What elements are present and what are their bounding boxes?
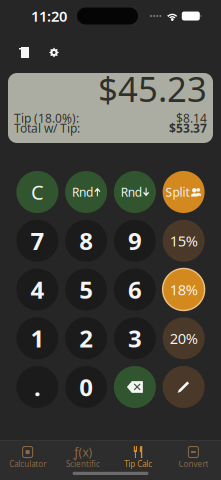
staticText: Calculator [9,458,46,469]
button[interactable]: 8 [65,220,107,262]
staticText: 11:20 [31,6,67,26]
staticText: $8.14 [176,110,207,126]
button[interactable]: Split [163,171,205,213]
button[interactable]: 18% [163,268,205,310]
staticText: 1 [30,322,44,354]
button[interactable]: 6 [114,268,156,310]
staticText: 15% [170,231,198,250]
staticText: Scientific [66,458,100,469]
button[interactable]: Settings [44,41,64,63]
staticText: 20% [170,328,198,348]
button[interactable]: 9 [114,220,156,262]
button[interactable]: ƒ(x) [55,441,110,469]
staticText: Rnd [121,184,142,200]
button[interactable]: Delete [114,366,156,408]
staticText: Tip Calc [124,458,152,469]
button[interactable]: 7 [16,220,58,262]
staticText: 5 [79,274,93,305]
button[interactable]: Calculator [0,441,55,469]
button[interactable]: . [16,366,58,408]
staticText: 0 [79,371,93,403]
staticText: Convert [178,458,208,469]
staticText: 2 [79,322,93,354]
staticText: Rnd [72,184,93,200]
button[interactable]: 5 [65,268,107,310]
staticText: 9 [128,225,142,257]
button[interactable]: 20% [163,317,205,359]
staticText: 8 [79,225,93,257]
staticText: 3 [128,322,142,354]
staticText: Tip (18.0%): [14,110,79,126]
staticText: $53.37 [169,120,207,136]
button[interactable]: Edit [163,366,205,408]
staticText: Split [165,184,189,200]
button[interactable]: Receipts [14,41,34,63]
staticText: Total w/ Tip: [14,120,80,136]
button[interactable]: Rnd [65,171,107,213]
staticText: 18% [170,280,198,299]
staticText: ƒ(x) [73,444,92,460]
button[interactable]: C [16,171,58,213]
staticText: 7 [30,225,44,257]
button[interactable]: 15% [163,220,205,262]
staticText: $45.23 [98,65,207,111]
staticText: 4 [30,274,44,305]
button[interactable]: Convert [166,441,221,469]
staticText: . [34,371,41,403]
button[interactable]: 3 [114,317,156,359]
button[interactable]: 4 [16,268,58,310]
button[interactable]: 1 [16,317,58,359]
staticText: C [31,179,44,205]
button[interactable]: 2 [65,317,107,359]
button[interactable]: Rnd [114,171,156,213]
button[interactable]: Tip Calc [110,441,166,469]
button[interactable]: 0 [65,366,107,408]
staticText: 6 [128,274,142,305]
